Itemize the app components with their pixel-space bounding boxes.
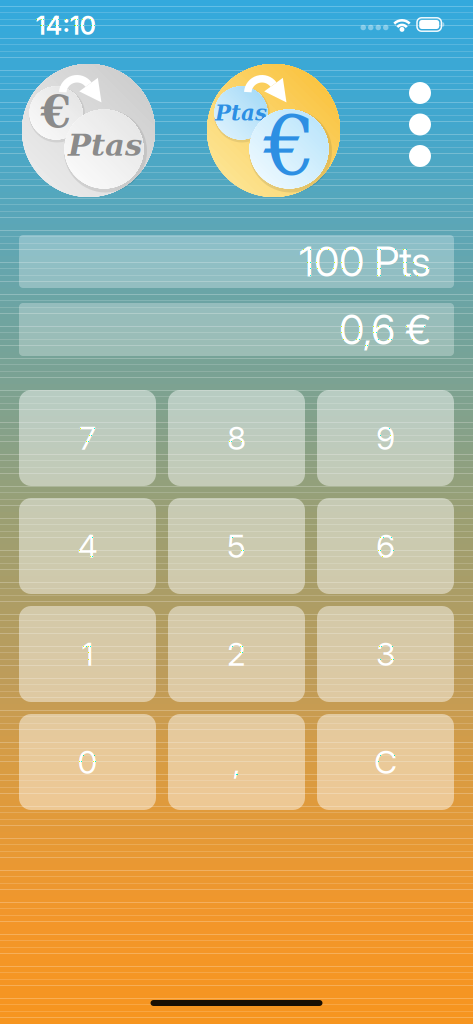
staticText: Ptas (68, 127, 142, 163)
button[interactable]: 4 (19, 498, 156, 594)
staticText: 2 (227, 635, 246, 673)
button[interactable]: 9 (317, 390, 454, 486)
button[interactable]: , (168, 714, 305, 810)
staticText: 100 Pts (299, 236, 431, 286)
staticText: Ptas (215, 100, 267, 126)
staticText: 9 (376, 419, 395, 457)
button[interactable]: C (317, 714, 454, 810)
staticText: 7 (79, 419, 96, 457)
staticText: 5 (227, 527, 246, 565)
button[interactable]: Pesetas to euros (207, 64, 340, 197)
staticText: 14:10 (35, 10, 96, 41)
staticText: 8 (227, 419, 246, 457)
staticText: € (263, 99, 316, 195)
staticText: , (232, 743, 240, 781)
button[interactable]: Euros to pesetas (22, 64, 155, 197)
button[interactable]: 1 (19, 606, 156, 702)
button[interactable]: 0 (19, 714, 156, 810)
button[interactable]: 3 (317, 606, 454, 702)
button[interactable]: 8 (168, 390, 305, 486)
button[interactable]: More options (391, 64, 449, 197)
staticText: € (40, 86, 71, 138)
button[interactable]: 2 (168, 606, 305, 702)
staticText: 3 (376, 635, 395, 673)
staticText: 4 (77, 527, 97, 565)
staticText: 0,6 € (339, 304, 431, 354)
staticText: 0 (77, 743, 97, 781)
button[interactable]: 5 (168, 498, 305, 594)
staticText: 6 (376, 527, 395, 565)
staticText: 1 (81, 635, 93, 673)
button[interactable]: 7 (19, 390, 156, 486)
button[interactable]: 6 (317, 498, 454, 594)
staticText: C (374, 743, 397, 781)
